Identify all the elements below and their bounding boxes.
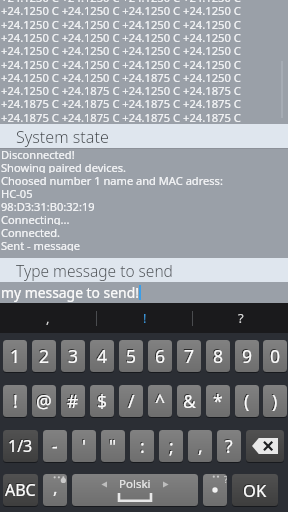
staticText: / — [127, 388, 134, 412]
staticText: 5 — [125, 343, 136, 367]
staticText: ' — [81, 433, 85, 457]
staticText: Showing paired devices. — [1, 160, 288, 173]
staticText: & — [183, 389, 196, 413]
button[interactable]: 0 — [263, 340, 287, 372]
button[interactable]: Period — [203, 474, 227, 506]
button[interactable]: 1/3 — [3, 430, 38, 462]
staticText: Connected. — [1, 225, 288, 238]
staticText: $ — [97, 389, 108, 413]
button[interactable]: " — [101, 430, 125, 462]
button[interactable]: Comma — [43, 474, 67, 506]
staticText: Polski — [119, 476, 151, 492]
staticText: @ — [36, 389, 52, 413]
button[interactable]: 5 — [119, 340, 143, 372]
button[interactable]: ; — [159, 430, 183, 462]
staticText: : — [140, 434, 145, 458]
staticText: 4 — [96, 343, 107, 367]
button[interactable]: * — [206, 385, 230, 417]
button[interactable]: , — [188, 430, 212, 462]
button[interactable]: ? — [217, 430, 241, 462]
staticText: 2 — [39, 344, 50, 368]
staticText: 9 — [241, 343, 252, 367]
staticText: ? — [238, 309, 244, 327]
staticText: Disconnected! — [1, 147, 288, 160]
button[interactable]: OK — [232, 474, 278, 506]
staticText: Connecting... — [1, 212, 288, 225]
staticText: Type message to send — [16, 260, 173, 281]
staticText: 8 — [213, 344, 224, 368]
staticText: ! — [143, 309, 147, 327]
staticText: * — [212, 388, 222, 412]
staticText: 98:D3:31:B0:32:19 — [1, 199, 288, 212]
button[interactable]: 7 — [177, 340, 201, 372]
button[interactable]: ^ — [148, 385, 172, 417]
button[interactable]: 4 — [90, 340, 114, 372]
staticText: ? — [224, 433, 232, 457]
staticText: 1/3 — [8, 435, 33, 457]
button[interactable]: , — [0, 303, 96, 333]
staticText: ? — [225, 434, 233, 458]
staticText: +24.1250 C +24.1250 C +24.1250 C +24.125… — [1, 43, 288, 58]
button[interactable]: ' — [72, 430, 96, 462]
button[interactable]: Backspace — [246, 430, 284, 462]
staticText: +24.1875 C +24.1875 C — [1, 123, 288, 138]
button[interactable]: & — [177, 385, 201, 417]
staticText: 1/3 — [7, 434, 32, 456]
staticText: ; — [168, 433, 173, 457]
staticText: ) — [271, 388, 277, 412]
staticText: my message to send! — [1, 283, 139, 302]
staticText: - — [51, 433, 57, 457]
staticText: +24.1875 C +24.1875 C +24.1875 C +24.187… — [1, 110, 288, 125]
staticText: 1 — [10, 344, 21, 368]
staticText: " — [109, 434, 117, 458]
staticText: 2 — [38, 343, 49, 367]
button[interactable]: $ — [90, 385, 114, 417]
staticText: ? — [224, 474, 227, 485]
staticText: ( — [244, 389, 250, 413]
staticText: +24.1250 C +24.1250 C +24.1250 C +24.125… — [1, 57, 288, 72]
staticText: 5 — [126, 344, 137, 368]
staticText: ' — [82, 434, 86, 458]
button[interactable]: ( — [235, 385, 259, 417]
staticText: # — [66, 388, 78, 412]
button[interactable]: @ — [32, 385, 56, 417]
button[interactable]: ABC — [3, 474, 38, 506]
staticText: * — [213, 389, 223, 413]
staticText: : — [139, 433, 144, 457]
button[interactable]: ! — [3, 385, 27, 417]
button[interactable]: # — [61, 385, 85, 417]
staticText: ! — [13, 389, 18, 413]
button[interactable]: - — [43, 430, 67, 462]
staticText: 3 — [67, 343, 78, 367]
staticText: 7 — [183, 343, 194, 367]
button[interactable]: / — [119, 385, 143, 417]
staticText: Sent - message — [1, 238, 288, 251]
staticText: ABC — [5, 479, 36, 501]
button[interactable]: 1 — [3, 340, 27, 372]
button[interactable]: ) — [263, 385, 287, 417]
button[interactable]: ? — [193, 303, 288, 333]
staticText: +24.1250 C +24.1250 C +24.1250 C +24.125… — [1, 17, 288, 32]
staticText: HC-05 — [1, 186, 288, 199]
button[interactable]: 2 — [32, 340, 56, 372]
staticText: , — [53, 476, 58, 499]
staticText: , — [46, 309, 50, 327]
button[interactable]: 9 — [235, 340, 259, 372]
button[interactable]: ! — [97, 303, 192, 333]
staticText: 6 — [155, 344, 166, 368]
button[interactable]: 3 — [61, 340, 85, 372]
staticText: +24.1250 C +24.1875 C +24.1250 C +24.187… — [1, 83, 288, 98]
staticText: 7 — [184, 344, 195, 368]
staticText: 6 — [154, 343, 165, 367]
staticText: ^ — [154, 388, 165, 412]
staticText: ^ — [155, 389, 166, 413]
staticText: OK — [242, 478, 266, 500]
staticText: $ — [96, 388, 107, 412]
button[interactable]: 6 — [148, 340, 172, 372]
button[interactable]: 8 — [206, 340, 230, 372]
staticText: " — [108, 433, 116, 457]
button[interactable]: : — [130, 430, 154, 462]
staticText: +24.1250 C +24.1250 C +24.1250 C +24.125… — [1, 3, 288, 18]
button[interactable]: Space — [72, 474, 198, 506]
staticText: ! — [12, 388, 17, 412]
